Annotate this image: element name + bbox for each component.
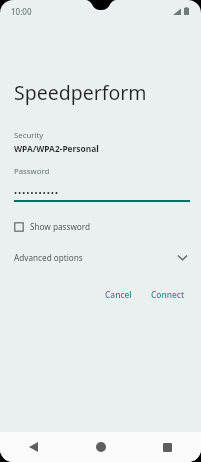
staticText: Speedperform (14, 79, 147, 106)
button[interactable]: Connect (145, 285, 191, 304)
staticText: Password (14, 166, 50, 177)
staticText: Connect (151, 289, 185, 300)
staticText: 10:00 (11, 6, 32, 17)
button[interactable] (14, 186, 190, 202)
staticText: Security (14, 130, 44, 141)
button[interactable]: Home (67, 432, 134, 462)
button[interactable]: Recent apps (134, 432, 201, 462)
staticText: WPA/WPA2-Personal (14, 143, 99, 154)
button[interactable]: Advanced options (0, 249, 201, 266)
staticText: Cancel (105, 289, 132, 300)
staticText: Show password (30, 221, 91, 232)
button[interactable]: Cancel (99, 285, 138, 304)
staticText: Advanced options (14, 252, 83, 263)
button[interactable]: Show password (14, 219, 97, 234)
button[interactable]: Back (0, 432, 67, 462)
